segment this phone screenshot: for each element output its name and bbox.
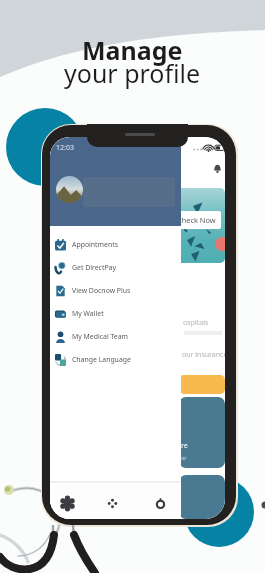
staticText: Change Language — [72, 355, 131, 364]
staticText: Appointments — [72, 240, 118, 249]
staticText: re — [181, 441, 188, 451]
staticText: Check Now — [177, 215, 216, 225]
button[interactable]: Recent apps — [152, 495, 168, 511]
button[interactable]: View Docnow Plus — [50, 279, 181, 302]
staticText: or — [181, 454, 187, 461]
staticText: our insurance — [182, 350, 225, 360]
staticText: Get DirectPay — [72, 263, 116, 272]
staticText: your profile — [64, 56, 201, 90]
button[interactable]: Check Now — [172, 211, 221, 229]
staticText: View Docnow Plus — [72, 286, 131, 295]
staticText: My Wallet — [72, 309, 104, 318]
button[interactable]: Get DirectPay — [50, 256, 181, 279]
button[interactable]: Change Language — [50, 348, 181, 371]
staticText: Manage — [82, 33, 183, 67]
staticText: ospitals — [183, 318, 209, 328]
staticText: My Medical Team — [72, 332, 128, 341]
button[interactable]: Back — [59, 495, 75, 511]
staticText: 12:03 — [56, 143, 74, 153]
button[interactable]: Home — [104, 495, 120, 511]
button[interactable]: My Wallet — [50, 302, 181, 325]
button[interactable]: Appointments — [50, 233, 181, 256]
button[interactable]: My Medical Team — [50, 325, 181, 348]
